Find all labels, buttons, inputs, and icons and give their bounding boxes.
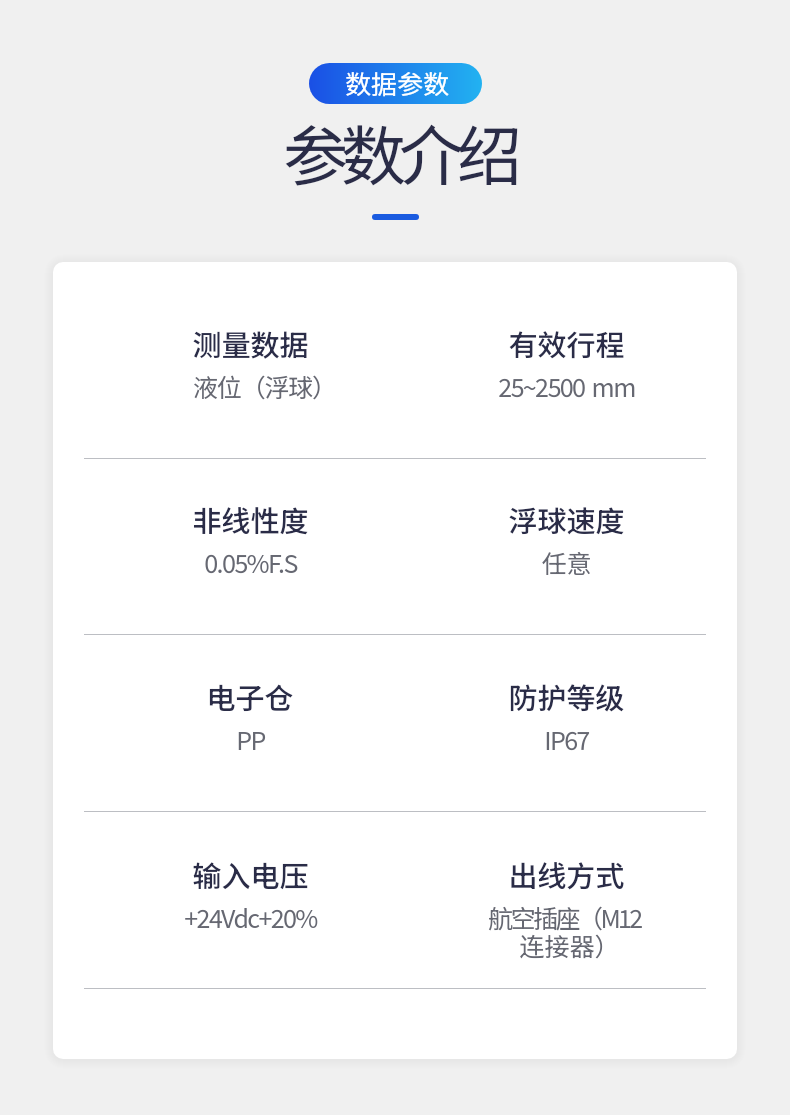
staticText: 连接器） bbox=[519, 927, 620, 963]
other: Section accent bbox=[372, 214, 419, 220]
staticText: 任意 bbox=[541, 544, 592, 580]
staticText: +24Vdc+20% bbox=[184, 899, 317, 935]
staticText: 测量数据 bbox=[192, 322, 309, 364]
staticText: 液位（浮球） bbox=[193, 368, 336, 404]
staticText: IP67 bbox=[544, 721, 589, 757]
staticText: 25~2500 mm bbox=[498, 368, 635, 404]
staticText: 参数介绍 bbox=[283, 105, 516, 199]
staticText: 非线性度 bbox=[192, 498, 309, 540]
staticText: PP bbox=[236, 721, 265, 757]
staticText: 防护等级 bbox=[508, 675, 625, 717]
button[interactable]: 浮球速度 bbox=[416, 498, 716, 580]
button[interactable]: 测量数据 bbox=[100, 322, 400, 404]
staticText: 浮球速度 bbox=[508, 498, 625, 540]
staticText: 0.05%F.S bbox=[204, 544, 297, 580]
staticText: 航空插座（M12 bbox=[488, 899, 641, 935]
button[interactable]: 出线方式 bbox=[416, 853, 716, 971]
staticText: 有效行程 bbox=[508, 322, 625, 364]
staticText: 输入电压 bbox=[192, 853, 309, 895]
button[interactable]: 数据参数 bbox=[309, 63, 482, 104]
button[interactable]: 防护等级 bbox=[416, 675, 716, 757]
button[interactable]: 非线性度 bbox=[100, 498, 400, 580]
button[interactable]: 电子仓 bbox=[100, 675, 400, 757]
staticText: 数据参数 bbox=[345, 64, 450, 102]
button[interactable]: 有效行程 bbox=[416, 322, 716, 404]
staticText: 出线方式 bbox=[508, 853, 625, 895]
staticText: 电子仓 bbox=[206, 675, 294, 717]
button[interactable]: 输入电压 bbox=[100, 853, 400, 935]
